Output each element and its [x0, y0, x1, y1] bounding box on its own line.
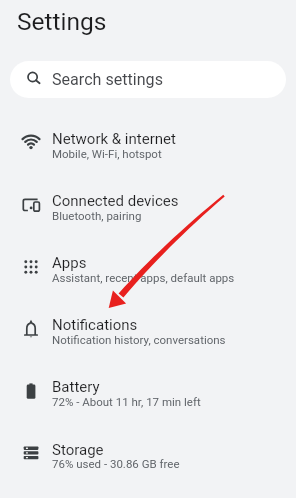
- staticText: Network & internet: [52, 130, 176, 148]
- staticText: Apps: [52, 254, 87, 272]
- staticText: Bluetooth, pairing: [52, 209, 142, 222]
- button[interactable]: [0, 112, 296, 174]
- staticText: Settings: [17, 7, 107, 36]
- button[interactable]: [0, 237, 296, 299]
- button[interactable]: Search settings: [10, 61, 286, 98]
- staticText: Battery: [52, 378, 100, 396]
- staticText: Connected devices: [52, 192, 179, 210]
- staticText: 76% used - 30.86 GB free: [52, 457, 180, 470]
- button[interactable]: [0, 361, 296, 423]
- button[interactable]: [0, 174, 296, 236]
- staticText: 72% - About 11 hr, 17 min left: [52, 395, 201, 408]
- staticText: Notifications: [52, 316, 138, 334]
- button[interactable]: [0, 299, 296, 361]
- staticText: Mobile, Wi-Fi, hotspot: [52, 147, 162, 160]
- staticText: Storage: [52, 441, 104, 459]
- staticText: Search settings: [52, 70, 163, 89]
- button[interactable]: [0, 423, 296, 485]
- staticText: Notification history, conversations: [52, 333, 226, 346]
- staticText: Assistant, recent apps, default apps: [52, 271, 235, 284]
